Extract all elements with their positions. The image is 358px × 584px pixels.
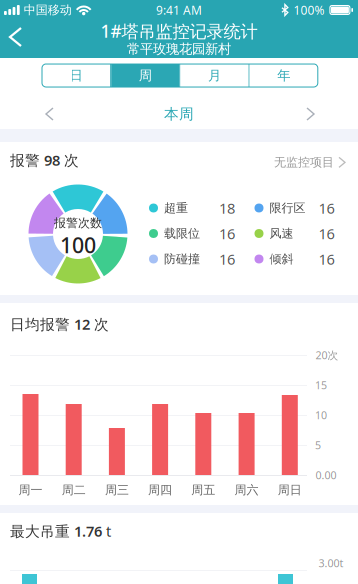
- staticText: 最大吊重: [10, 523, 70, 541]
- staticText: 日: [70, 67, 83, 84]
- staticText: 风速: [269, 226, 293, 241]
- staticText: 15: [315, 378, 327, 392]
- staticText: 限行区: [269, 201, 305, 215]
- staticText: 周一: [18, 483, 42, 497]
- staticText: 本周: [164, 105, 194, 123]
- staticText: 周二: [62, 483, 86, 497]
- button[interactable]: 月: [180, 64, 249, 87]
- staticText: 20次: [315, 348, 338, 362]
- staticText: 周四: [148, 483, 172, 497]
- staticText: 3.00t: [318, 556, 343, 570]
- staticText: 5: [315, 438, 321, 452]
- staticText: 18: [219, 198, 235, 218]
- button[interactable]: 无监控项目: [274, 155, 345, 170]
- staticText: 周: [139, 67, 152, 84]
- staticText: 16: [318, 224, 334, 243]
- staticText: 日均报警: [10, 316, 70, 334]
- staticText: 12: [74, 314, 90, 334]
- staticText: 16: [219, 249, 235, 269]
- staticText: 次: [64, 152, 79, 170]
- staticText: 9:41 AM: [156, 2, 202, 18]
- staticText: 报警: [10, 152, 40, 170]
- button[interactable]: [299, 100, 322, 128]
- staticText: 1.76: [74, 521, 102, 541]
- button[interactable]: 周: [111, 64, 179, 87]
- button[interactable]: 日: [42, 64, 110, 87]
- staticText: 周三: [105, 483, 129, 497]
- staticText: 无监控项目: [274, 155, 334, 170]
- button[interactable]: [38, 100, 61, 128]
- button[interactable]: [4, 22, 27, 52]
- staticText: 载限位: [164, 226, 200, 241]
- staticText: 16: [219, 224, 235, 243]
- staticText: 年: [277, 67, 290, 84]
- staticText: 超重: [164, 201, 188, 215]
- staticText: 防碰撞: [164, 252, 200, 266]
- button[interactable]: 年: [250, 64, 318, 87]
- staticText: 周日: [278, 483, 302, 497]
- staticText: 98: [44, 150, 60, 170]
- staticText: 倾斜: [269, 252, 293, 266]
- staticText: 100: [60, 231, 96, 259]
- staticText: 次: [94, 316, 109, 334]
- staticText: 常平玫瑰花园新村: [127, 41, 231, 57]
- staticText: 16: [318, 198, 334, 218]
- staticText: 1#塔吊监控记录统计: [100, 19, 257, 42]
- staticText: t: [106, 521, 111, 541]
- staticText: 月: [208, 67, 221, 84]
- staticText: 中国移动: [24, 3, 72, 17]
- staticText: 10: [315, 408, 327, 422]
- staticText: 周五: [191, 483, 215, 497]
- staticText: 报警次数: [54, 216, 102, 230]
- staticText: 16: [318, 249, 334, 269]
- staticText: 0.00: [315, 468, 336, 482]
- staticText: 100%: [293, 2, 324, 18]
- staticText: 周六: [235, 483, 259, 497]
